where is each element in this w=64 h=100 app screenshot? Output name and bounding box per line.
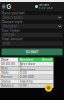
staticText: Balance (1, 84, 14, 87)
staticText: Total Amount (1, 37, 22, 41)
staticText: Odds (1, 71, 8, 74)
staticText: Select game (3, 16, 23, 19)
staticText: 0.00 USD (20, 75, 34, 79)
staticText: Result (42, 58, 52, 61)
staticText: 0.00 (20, 84, 27, 87)
staticText: 0.00 (3, 42, 10, 45)
button[interactable]: Account (35, 3, 53, 10)
staticText: Your Ticket (1, 29, 19, 32)
staticText: user_name (39, 3, 49, 6)
staticText: Bets (1, 67, 7, 70)
staticText: Choose style (1, 20, 22, 24)
staticText: Numbers (20, 58, 34, 61)
staticText: SUBMIT (25, 50, 38, 54)
staticText: Place your bet (1, 11, 24, 15)
button[interactable]: SUBMIT (1, 48, 62, 55)
staticText: 0.00 USD (39, 7, 53, 10)
button[interactable]: Menu (1, 3, 6, 10)
staticText: G (6, 2, 11, 11)
staticText: Next draw (20, 62, 35, 66)
staticText: Payout (1, 75, 12, 79)
button[interactable]: Support (45, 84, 52, 92)
staticText: 0 selections (20, 65, 35, 72)
staticText: Draw (1, 58, 8, 61)
staticText: 000000 (3, 33, 15, 37)
button[interactable]: Home (6, 3, 11, 10)
staticText: 00:00:00 (1, 62, 15, 66)
staticText: Standard (3, 24, 17, 28)
staticText: 0.00 (20, 71, 27, 74)
staticText: Awaiting (20, 80, 33, 83)
staticText: Status (1, 80, 10, 83)
